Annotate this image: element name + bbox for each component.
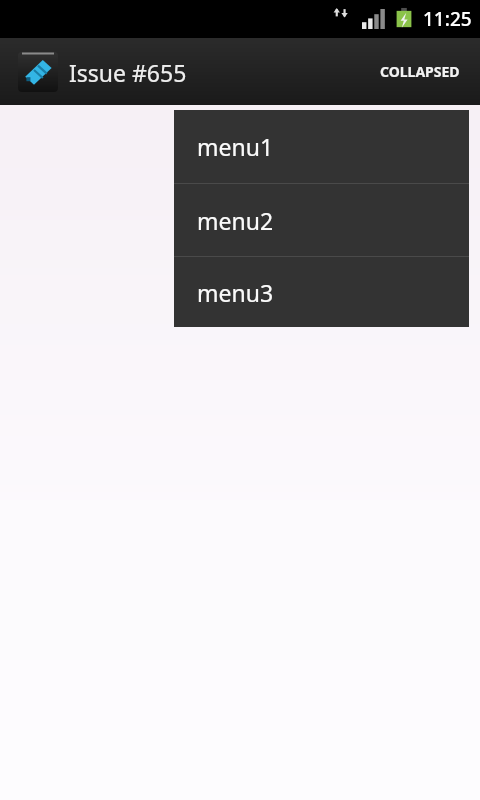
button[interactable]: menu1 xyxy=(174,110,469,183)
staticText: menu2 xyxy=(197,205,274,236)
staticText: menu1 xyxy=(197,131,274,162)
staticText: COLLAPSED xyxy=(380,62,460,81)
staticText: Issue #655 xyxy=(69,57,187,88)
staticText: menu3 xyxy=(197,277,274,308)
button[interactable]: COLLAPSED xyxy=(374,52,466,91)
button[interactable]: Navigate up, app icon xyxy=(18,52,193,92)
button[interactable]: menu3 xyxy=(174,257,469,327)
button[interactable]: menu2 xyxy=(174,184,469,256)
staticText: 11:25 xyxy=(423,6,472,32)
